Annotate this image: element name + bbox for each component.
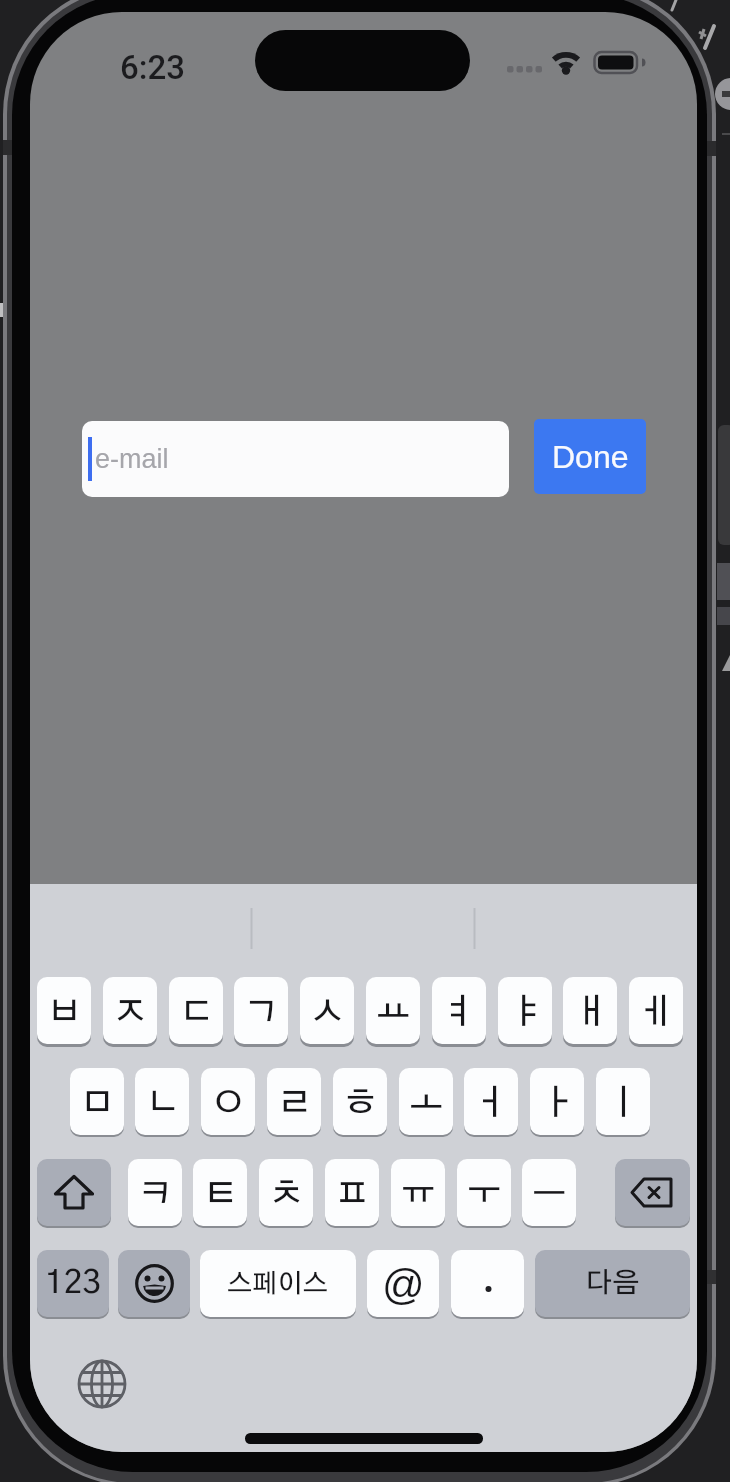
staticText: ㅂ — [47, 995, 82, 1030]
button[interactable]: ㅐ — [563, 977, 617, 1044]
staticText: ㄴ — [145, 1086, 180, 1121]
button[interactable]: ㅊ — [259, 1159, 313, 1226]
staticText: ㅕ — [442, 995, 477, 1030]
button[interactable] — [37, 1159, 111, 1226]
button[interactable]: ㅡ — [522, 1159, 576, 1226]
button[interactable]: ㅈ — [103, 977, 157, 1044]
staticText: ㅈ — [113, 995, 148, 1030]
staticText: ㅑ — [508, 995, 543, 1030]
staticText: ㅋ — [138, 1177, 173, 1212]
button[interactable]: ㄷ — [169, 977, 223, 1044]
staticText: ㅅ — [310, 995, 345, 1030]
staticText: ㅐ — [573, 995, 608, 1030]
button[interactable]: ㅏ — [530, 1068, 584, 1135]
staticText: 스페이스 — [227, 1271, 329, 1297]
button[interactable]: ㅣ — [596, 1068, 650, 1135]
staticText: ㅣ — [606, 1086, 641, 1121]
button[interactable]: ㅗ — [399, 1068, 453, 1135]
button[interactable]: 123 — [37, 1250, 109, 1317]
staticText: ㅜ — [467, 1177, 502, 1212]
staticText: ㅏ — [540, 1086, 575, 1121]
staticText: ㅎ — [343, 1086, 378, 1121]
staticText: ㄹ — [277, 1086, 312, 1121]
staticText: e-mail — [95, 444, 169, 474]
button[interactable]: ㅓ — [464, 1068, 518, 1135]
staticText: ㅛ — [376, 995, 411, 1030]
button[interactable]: ㅅ — [300, 977, 354, 1044]
staticText: 6:23 — [120, 48, 186, 87]
button[interactable]: ㅌ — [193, 1159, 247, 1226]
button[interactable]: ㅑ — [498, 977, 552, 1044]
staticText: Done — [552, 439, 629, 475]
button[interactable]: e-mail — [82, 421, 509, 497]
staticText: ㅠ — [401, 1177, 436, 1212]
button[interactable]: 다음 — [535, 1250, 690, 1317]
button[interactable]: 스페이스 — [200, 1250, 356, 1317]
button[interactable] — [118, 1250, 190, 1317]
button[interactable]: ㅋ — [128, 1159, 182, 1226]
staticText: 다음 — [585, 1270, 640, 1298]
button[interactable]: ㅠ — [391, 1159, 445, 1226]
button[interactable] — [615, 1159, 690, 1226]
button[interactable]: ㄹ — [267, 1068, 321, 1135]
staticText: ㄷ — [179, 995, 214, 1030]
button[interactable] — [451, 1250, 524, 1317]
button[interactable]: ㅂ — [37, 977, 91, 1044]
button[interactable]: ㅍ — [325, 1159, 379, 1226]
staticText: ㅁ — [80, 1086, 115, 1121]
button[interactable]: ㅛ — [366, 977, 420, 1044]
button[interactable]: ㅜ — [457, 1159, 511, 1226]
staticText: ㄱ — [244, 995, 279, 1030]
staticText: ㅗ — [409, 1086, 444, 1121]
button[interactable]: ㅇ — [201, 1068, 255, 1135]
staticText: ㅇ — [211, 1086, 246, 1121]
button[interactable]: ㄴ — [135, 1068, 189, 1135]
staticText: ㅡ — [532, 1177, 567, 1212]
staticText: ㅊ — [269, 1177, 304, 1212]
button[interactable]: ㅔ — [629, 977, 683, 1044]
button[interactable]: ㅁ — [70, 1068, 124, 1135]
button[interactable]: ㅎ — [333, 1068, 387, 1135]
staticText: ㅓ — [474, 1086, 509, 1121]
staticText: ㅔ — [639, 995, 674, 1030]
button[interactable]: ㄱ — [234, 977, 288, 1044]
staticText: ㅍ — [335, 1177, 370, 1212]
button[interactable]: Done — [534, 419, 646, 494]
button[interactable]: ㅕ — [432, 977, 486, 1044]
button[interactable]: @ — [367, 1250, 439, 1317]
staticText: ㅌ — [203, 1177, 238, 1212]
staticText: 123 — [45, 1267, 101, 1300]
staticText: @ — [382, 1261, 425, 1308]
